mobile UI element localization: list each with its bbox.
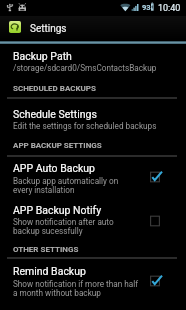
staticText: Settings bbox=[30, 23, 67, 35]
staticText: 10:40 bbox=[158, 3, 181, 14]
other: App icon bbox=[9, 21, 21, 33]
staticText: APP Backup Notify bbox=[13, 204, 102, 216]
button[interactable]: APP Auto Backup bbox=[0, 157, 186, 198]
staticText: Remind Backup bbox=[13, 265, 86, 277]
button[interactable]: Remind Backup bbox=[0, 259, 186, 304]
staticText: Show notification after auto backup suce… bbox=[13, 218, 114, 236]
staticText: Edit the settings for scheduled backups bbox=[13, 122, 157, 131]
staticText: Schedule Settings bbox=[13, 108, 97, 120]
button[interactable]: APP Backup Notify bbox=[0, 198, 186, 245]
staticText: OTHER SETTINGS bbox=[13, 245, 79, 254]
button[interactable]: Backup Path bbox=[0, 44, 186, 84]
staticText: SCHEDULED BACKUPS bbox=[13, 84, 96, 93]
staticText: Show notification if more than half a mo… bbox=[13, 280, 139, 298]
button[interactable]: Disabled bbox=[150, 215, 164, 229]
staticText: 93 bbox=[142, 3, 151, 12]
staticText: APP BACKUP SETTINGS bbox=[13, 141, 102, 150]
button[interactable]: Enabled bbox=[150, 171, 164, 185]
staticText: Backup Path bbox=[13, 50, 72, 62]
button[interactable]: App icon bbox=[0, 16, 186, 41]
button[interactable]: Enabled bbox=[150, 275, 164, 289]
button[interactable]: Schedule Settings bbox=[0, 99, 186, 141]
staticText: APP Auto Backup bbox=[13, 162, 95, 174]
staticText: /storage/sdcard0/SmsContactsBackup bbox=[13, 64, 157, 73]
staticText: Backup app automatically on every instal… bbox=[13, 177, 119, 195]
